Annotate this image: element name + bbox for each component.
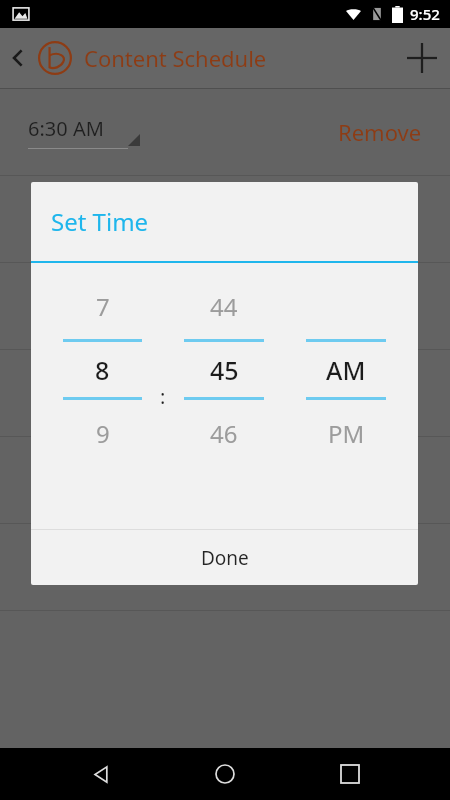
staticText: 44 (210, 290, 238, 323)
staticText: Content Schedule (84, 43, 267, 73)
staticText: : (160, 383, 166, 410)
button[interactable]: 9 (53, 412, 152, 454)
staticText: 8 (95, 353, 110, 387)
staticText: 46 (210, 417, 238, 450)
button[interactable]: Back (0, 40, 36, 76)
button[interactable]: 7 (53, 285, 152, 327)
button[interactable]: Back (77, 750, 125, 798)
button[interactable]: 44 (174, 285, 274, 327)
button[interactable]: Recent apps (326, 750, 374, 798)
staticText: 9:52 (410, 4, 440, 24)
button[interactable]: 8 (53, 342, 152, 397)
button[interactable]: AM (296, 342, 396, 397)
staticText: 45 (210, 353, 239, 387)
button[interactable]: Home (201, 750, 249, 798)
staticText: AM (326, 353, 366, 387)
staticText: Remove (338, 117, 422, 147)
staticText: Set Time (51, 205, 149, 238)
button[interactable]: 46 (174, 412, 274, 454)
button[interactable]: Add (394, 30, 450, 86)
staticText: 6:30 AM (28, 115, 104, 142)
button[interactable]: 6:30 AM (0, 89, 450, 175)
button[interactable]: Done (31, 530, 418, 585)
staticText: 7 (96, 290, 110, 323)
staticText: PM (328, 417, 365, 450)
staticText: Done (201, 545, 249, 571)
button[interactable]: 45 (174, 342, 274, 397)
staticText: 9 (96, 417, 110, 450)
button[interactable]: PM (296, 412, 396, 454)
